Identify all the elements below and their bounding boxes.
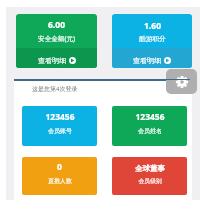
staticText: 查看明细 (38, 56, 66, 65)
staticText: 会员姓名 (138, 127, 162, 135)
staticText: 安全金额(元) (38, 34, 75, 43)
button[interactable]: Settings (166, 69, 197, 94)
button[interactable]: 1.60 (112, 14, 192, 68)
staticText: 会员账号 (48, 127, 72, 135)
staticText: 查看明细 (133, 56, 161, 65)
staticText: 0 (57, 161, 62, 173)
staticText: 这是您第4次登录 (32, 85, 78, 93)
staticText: 直推人数 (48, 177, 72, 185)
button[interactable]: 123456 (112, 106, 187, 146)
button[interactable]: 查看明细 (112, 48, 192, 68)
button[interactable]: 123456 (22, 106, 97, 146)
staticText: 1.60 (144, 20, 161, 32)
button[interactable]: 0 (22, 157, 97, 195)
staticText: 酷游积分 (139, 35, 166, 43)
staticText: 会员级别 (138, 177, 162, 184)
button[interactable]: 查看明细 (16, 48, 97, 68)
staticText: 123456 (135, 111, 165, 123)
button[interactable]: 6.00 (16, 14, 97, 68)
staticText: 123456 (45, 111, 75, 123)
staticText: 全球董事 (135, 164, 165, 173)
button[interactable]: 全球董事 (112, 157, 187, 195)
staticText: 6.00 (48, 19, 65, 31)
